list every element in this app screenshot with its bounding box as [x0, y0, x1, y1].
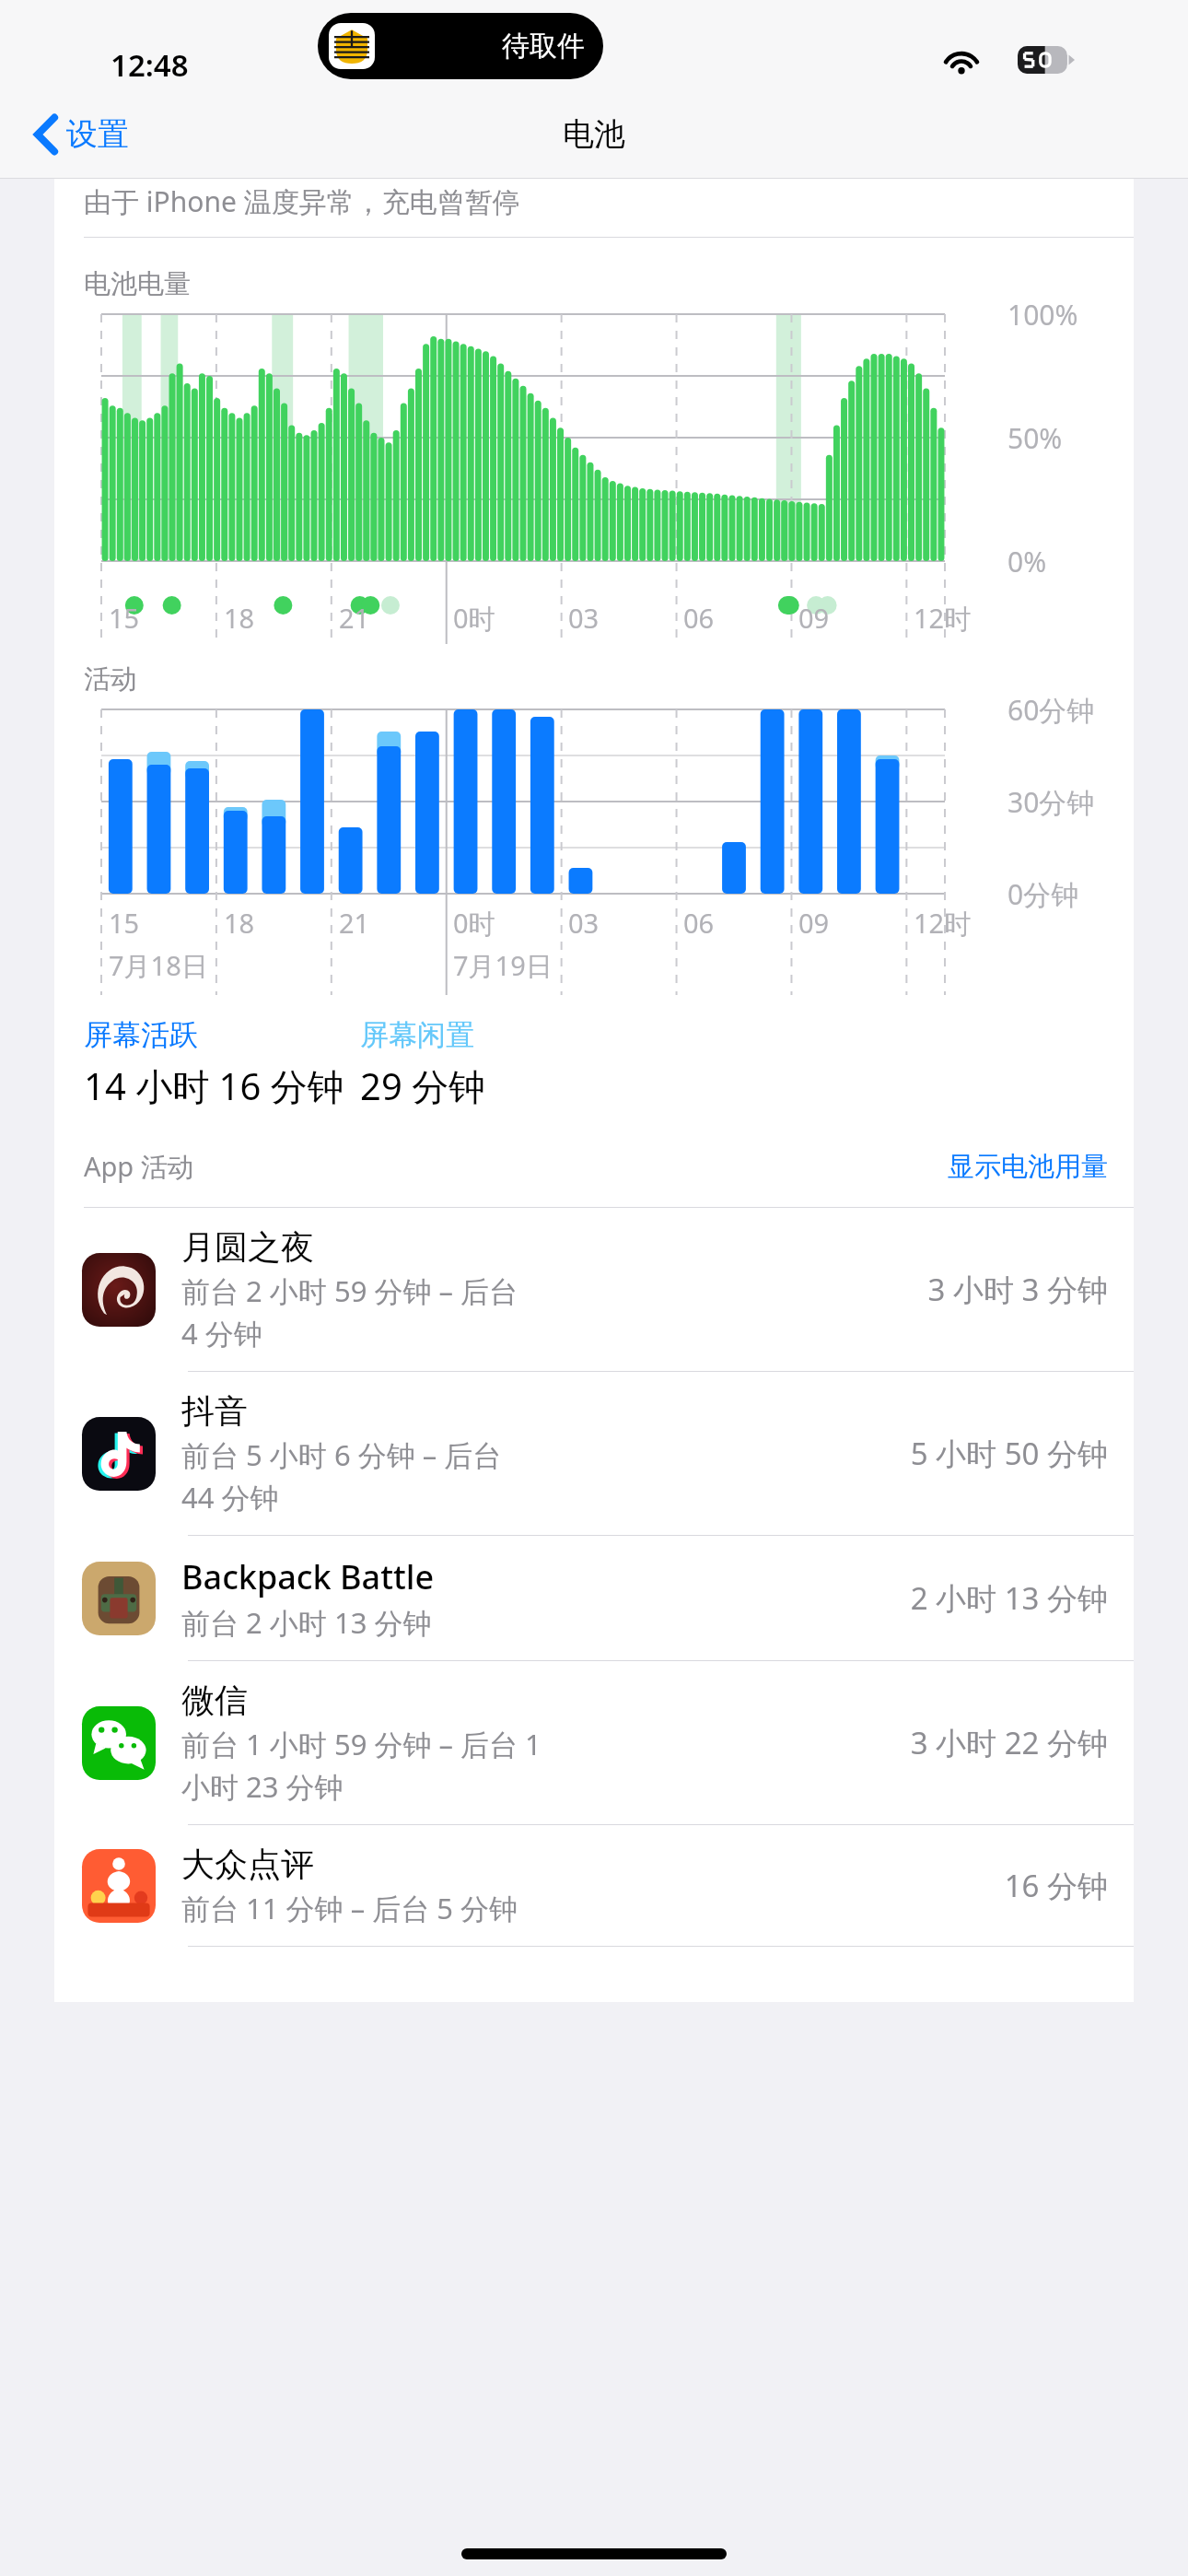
staticText: 30分钟 — [1007, 783, 1095, 821]
staticText: 09 — [798, 905, 830, 940]
staticText: App 活动 — [84, 1148, 194, 1185]
staticText: 06 — [683, 600, 715, 635]
staticText: 7月19日 — [453, 947, 553, 984]
staticText: 03 — [568, 905, 600, 940]
staticText: 21 — [339, 905, 370, 940]
staticText: 09 — [798, 600, 830, 635]
staticText: 06 — [683, 905, 715, 940]
button[interactable]: 显示电池用量 — [948, 1150, 1108, 1184]
staticText: 7月18日 — [109, 947, 208, 984]
staticText: 大众点评 — [181, 1844, 314, 1885]
staticText: 29 分钟 — [360, 1060, 486, 1111]
button[interactable]: Backpack Battle — [54, 1536, 1134, 1660]
staticText: 3 小时 22 分钟 — [832, 1722, 1108, 1763]
staticText: 前台 2 小时 13 分钟 — [181, 1603, 432, 1642]
staticText: 由于 iPhone 温度异常，充电曾暂停 — [84, 182, 520, 220]
staticText: 16 分钟 — [832, 1865, 1108, 1906]
button[interactable]: 抖音 — [54, 1372, 1134, 1535]
staticText: 3 小时 3 分钟 — [832, 1269, 1108, 1310]
staticText: 5 小时 50 分钟 — [832, 1433, 1108, 1474]
staticText: 14 小时 16 分钟 — [84, 1060, 344, 1111]
staticText: 微信 — [181, 1680, 248, 1721]
staticText: 12时 — [914, 905, 972, 940]
staticText: 前台 2 小时 59 分钟 – 后台 4 分钟 — [181, 1271, 518, 1352]
staticText: 屏幕闲置 — [360, 1017, 474, 1053]
staticText: 100% — [1007, 296, 1078, 334]
staticText: 15 — [109, 905, 140, 940]
staticText: 屏幕活跃 — [84, 1017, 198, 1053]
staticText: 2 小时 13 分钟 — [832, 1577, 1108, 1619]
staticText: 0时 — [453, 600, 495, 635]
staticText: 活动 — [84, 662, 137, 697]
staticText: 电池电量 — [84, 267, 191, 301]
staticText: 03 — [568, 600, 600, 635]
staticText: 12:48 — [111, 44, 189, 86]
button[interactable]: 月圆之夜 — [54, 1208, 1134, 1371]
staticText: 60分钟 — [1007, 691, 1095, 729]
button[interactable]: 微信 — [54, 1661, 1134, 1824]
staticText: 前台 5 小时 6 分钟 – 后台 44 分钟 — [181, 1435, 502, 1516]
staticText: 12时 — [914, 600, 972, 635]
staticText: 设置 — [66, 114, 129, 154]
staticText: 月圆之夜 — [181, 1226, 314, 1268]
staticText: 0时 — [453, 905, 495, 940]
staticText: 0% — [1007, 543, 1047, 580]
staticText: 显示电池用量 — [948, 1150, 1108, 1184]
staticText: 抖音 — [181, 1390, 248, 1432]
button[interactable]: 大众点评 — [54, 1825, 1134, 1946]
staticText: 18 — [224, 905, 255, 940]
staticText: 50% — [1007, 419, 1063, 457]
staticText: 18 — [224, 600, 255, 635]
staticText: 15 — [109, 600, 140, 635]
staticText: 前台 1 小时 59 分钟 – 后台 1 小时 23 分钟 — [181, 1725, 542, 1806]
staticText: 电池 — [563, 114, 625, 154]
button[interactable]: 设置 — [28, 105, 136, 163]
staticText: Backpack Battle — [181, 1554, 435, 1599]
staticText: 前台 11 分钟 – 后台 5 分钟 — [181, 1889, 518, 1927]
staticText: 待取件 — [502, 29, 585, 64]
staticText: 21 — [339, 600, 370, 635]
staticText: 0分钟 — [1007, 875, 1079, 913]
